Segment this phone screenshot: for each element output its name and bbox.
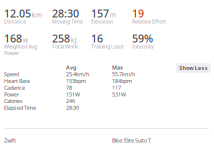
- staticText: Power: [4, 49, 19, 57]
- staticText: Avg: [66, 64, 76, 71]
- staticText: Speed: [4, 71, 19, 78]
- staticText: 117: [112, 84, 121, 91]
- staticText: Weighted Avg: [4, 43, 37, 50]
- staticText: 55.7km/h: [112, 71, 135, 78]
- staticText: 16: [91, 31, 103, 45]
- staticText: 246: [66, 97, 75, 105]
- staticText: Distance: [4, 18, 26, 25]
- staticText: m: [110, 10, 116, 19]
- staticText: 151W: [66, 91, 80, 98]
- staticText: kJ: [71, 35, 77, 44]
- staticText: Relative Effort: [132, 18, 166, 25]
- staticText: 157: [91, 6, 109, 20]
- staticText: 184bpm: [112, 77, 132, 84]
- staticText: 28:30: [52, 6, 79, 20]
- staticText: Intensity: [132, 43, 154, 50]
- staticText: 28:30: [66, 104, 79, 111]
- staticText: 531W: [112, 91, 126, 98]
- staticText: Elapsed Time: [4, 104, 36, 111]
- staticText: km: [32, 10, 42, 19]
- staticText: Training Load: [91, 43, 123, 50]
- staticText: 19: [132, 6, 144, 20]
- staticText: Heart Rate: [4, 77, 30, 84]
- staticText: 168: [4, 31, 22, 45]
- staticText: Moving Time: [52, 18, 83, 25]
- staticText: Max: [112, 64, 123, 71]
- staticText: 59%: [132, 31, 153, 45]
- button[interactable]: Show Less: [176, 63, 211, 73]
- staticText: Show Less: [179, 64, 208, 72]
- staticText: Cadence: [4, 84, 25, 91]
- staticText: Elevation: [91, 18, 113, 25]
- staticText: 25.4km/h: [66, 71, 89, 78]
- staticText: 258: [52, 31, 70, 45]
- staticText: Bike: Elite Suito T: [112, 137, 151, 144]
- staticText: 153bpm: [66, 77, 86, 84]
- staticText: 78: [66, 84, 72, 91]
- staticText: Zwift: [4, 137, 16, 144]
- staticText: Calories: [4, 97, 23, 105]
- staticText: w: [23, 35, 28, 44]
- staticText: 12.05: [4, 6, 31, 20]
- staticText: Power: [4, 91, 19, 98]
- staticText: Total Work: [52, 43, 78, 50]
